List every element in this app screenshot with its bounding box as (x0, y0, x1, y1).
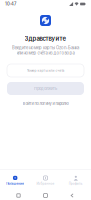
staticText: или номер счёта из договора (16, 50, 74, 55)
staticText: Здравствуйте (24, 35, 66, 42)
staticText: Номер карты или счёта (26, 69, 64, 72)
staticText: Профиль (69, 182, 83, 185)
button[interactable]: Профиль (61, 168, 91, 190)
button[interactable]: Recents (14, 191, 23, 200)
staticText: Введите номер карты Ozon-Банка (12, 45, 79, 50)
button[interactable]: Избранное (30, 168, 61, 190)
button[interactable]: Back (68, 191, 77, 200)
staticText: Продолжить (34, 86, 57, 91)
staticText: Избранное (36, 182, 54, 185)
button[interactable]: Войти по логину и паролю (0, 100, 91, 107)
staticText: 10:47 (5, 1, 16, 7)
button[interactable]: Home (41, 191, 50, 200)
button[interactable]: Погашение (0, 168, 30, 190)
staticText: Погашение (6, 182, 24, 185)
button[interactable]: Продолжить (7, 82, 84, 95)
staticText: Войти по логину и паролю (22, 101, 68, 106)
